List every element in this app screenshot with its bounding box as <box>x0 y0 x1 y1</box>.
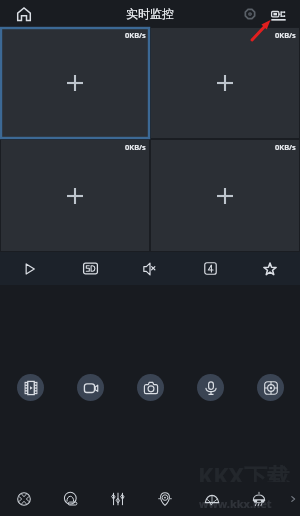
staticText: 0KB/s <box>275 30 296 40</box>
staticText: 实时监控 <box>126 6 174 21</box>
button[interactable]: Four channel split view <box>180 252 240 285</box>
button[interactable]: Home <box>12 2 35 25</box>
button[interactable]: Video playback <box>17 374 44 401</box>
button[interactable]: Play <box>0 252 60 285</box>
button[interactable]: Stream quality standard definition <box>60 252 120 285</box>
other: More <box>288 494 298 504</box>
button[interactable]: 0KB/s <box>1 28 149 138</box>
button[interactable]: Two way talk <box>197 374 224 401</box>
button[interactable]: Spotlight <box>141 482 188 516</box>
button[interactable]: Direction control <box>0 482 47 516</box>
staticText: 0KB/s <box>125 30 146 40</box>
button[interactable]: PTZ control <box>257 374 284 401</box>
button[interactable]: Light <box>235 482 282 516</box>
staticText: KKX下载 <box>198 460 290 491</box>
button[interactable]: 0KB/s <box>151 140 299 251</box>
button[interactable]: 0KB/s <box>1 140 149 251</box>
staticText: www.kkx.net <box>199 496 272 511</box>
button[interactable]: Preset position <box>47 482 94 516</box>
button[interactable]: Add to favorites <box>240 252 300 285</box>
button[interactable]: Take snapshot <box>137 374 164 401</box>
button[interactable]: Device list <box>267 3 289 25</box>
staticText: 0KB/s <box>125 142 146 152</box>
button[interactable]: Start recording <box>77 374 104 401</box>
button[interactable]: Image adjustment <box>94 482 141 516</box>
button[interactable]: Wiper <box>188 482 235 516</box>
button[interactable]: Settings <box>239 3 261 25</box>
button[interactable]: 0KB/s <box>151 28 299 138</box>
staticText: 0KB/s <box>275 142 296 152</box>
button[interactable]: Mute <box>120 252 180 285</box>
